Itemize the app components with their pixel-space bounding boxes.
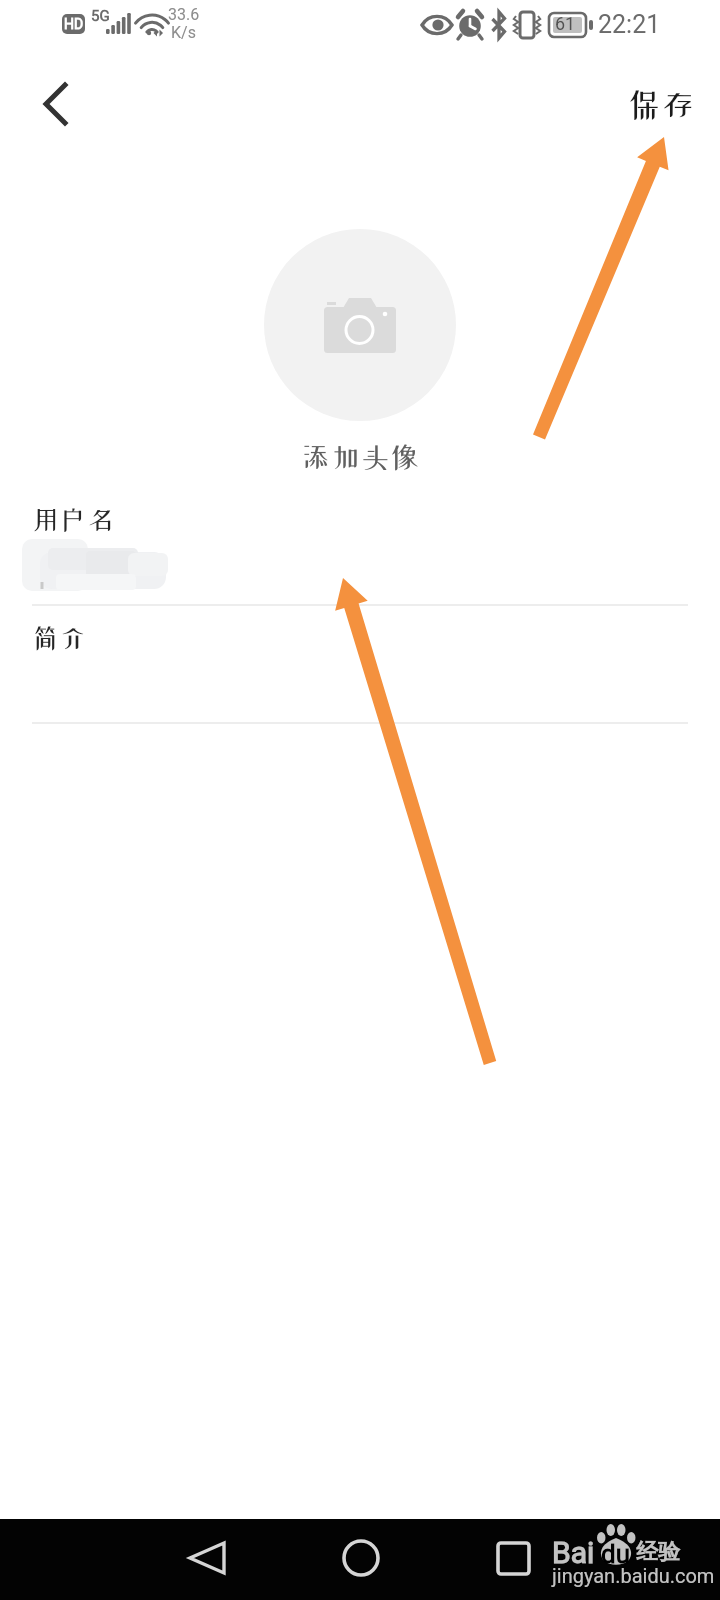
staticText: K/s bbox=[171, 23, 196, 42]
staticText: 33.6 bbox=[168, 5, 200, 24]
button[interactable]: Add avatar bbox=[264, 229, 456, 421]
staticText: HD bbox=[64, 16, 84, 32]
staticText: 用户名 bbox=[31, 506, 114, 533]
button[interactable]: Recents bbox=[490, 1528, 552, 1590]
staticText: du bbox=[601, 1539, 630, 1569]
staticText: 保存 bbox=[627, 88, 695, 121]
staticText: jingyan.baidu.com bbox=[552, 1564, 715, 1587]
button[interactable]: 简介 bbox=[0, 606, 720, 724]
staticText: 61 bbox=[555, 13, 576, 34]
staticText: Bai bbox=[552, 1535, 595, 1570]
button[interactable]: 保存 bbox=[618, 76, 704, 132]
staticText: 简介 bbox=[31, 624, 87, 651]
staticText: 22:21 bbox=[598, 10, 661, 39]
button[interactable]: Back bbox=[18, 74, 80, 136]
staticText: 经验 bbox=[636, 1538, 680, 1566]
button[interactable]: Back bbox=[176, 1528, 238, 1590]
staticText: 5G bbox=[91, 7, 110, 25]
button[interactable]: 用户名 bbox=[0, 496, 720, 606]
staticText: 添加头像 bbox=[301, 442, 420, 471]
button[interactable]: Home bbox=[330, 1527, 392, 1589]
